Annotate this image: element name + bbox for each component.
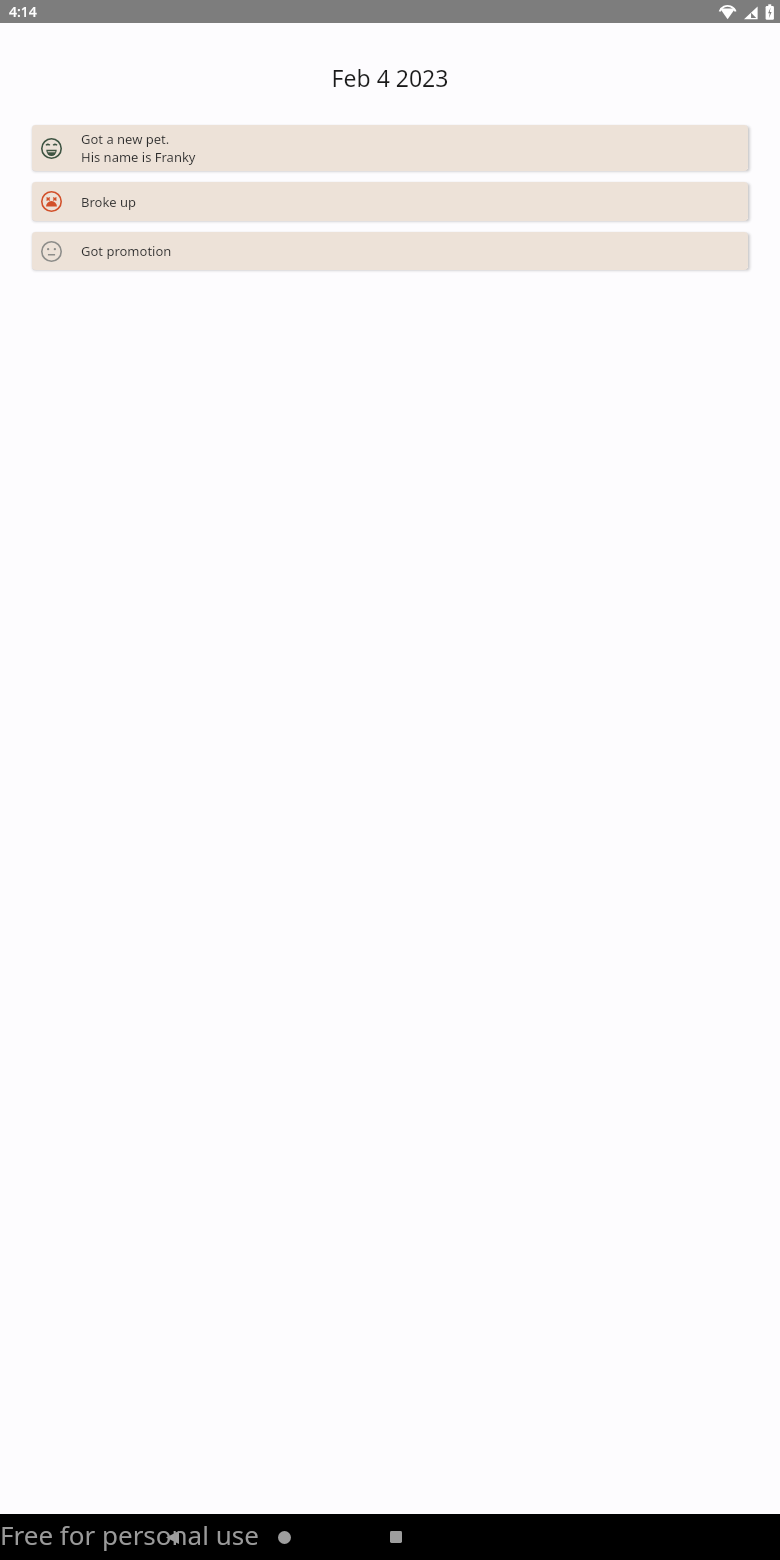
button[interactable]: Recent apps bbox=[376, 1517, 416, 1557]
staticText: 4:14 bbox=[9, 2, 37, 21]
button[interactable]: Back bbox=[152, 1517, 192, 1557]
staticText: Broke up bbox=[81, 193, 137, 211]
button[interactable]: Home bbox=[264, 1517, 304, 1557]
button[interactable]: Broke up bbox=[32, 182, 748, 221]
button[interactable]: Got promotion bbox=[32, 232, 748, 270]
staticText: His name is Franky bbox=[81, 148, 196, 166]
staticText: Feb 4 2023 bbox=[0, 62, 780, 93]
staticText: Got promotion bbox=[81, 242, 172, 260]
staticText: Got a new pet. bbox=[81, 130, 170, 148]
staticText: Free for personal use bbox=[0, 1517, 259, 1552]
button[interactable]: Got a new pet. bbox=[32, 125, 748, 171]
